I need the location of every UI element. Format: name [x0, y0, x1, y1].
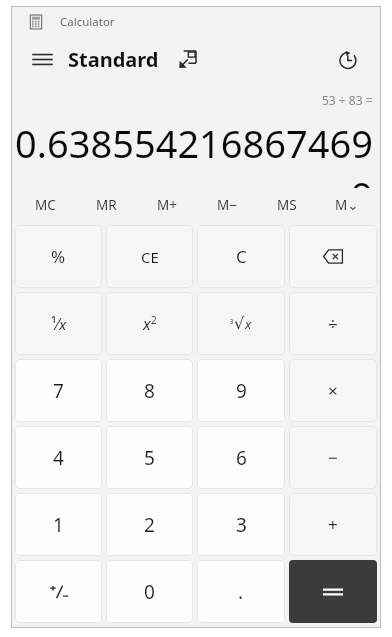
- button[interactable]: Open navigation menu: [27, 44, 57, 74]
- staticText: M+: [157, 196, 177, 214]
- staticText: MC: [35, 196, 56, 214]
- button[interactable]: 4: [15, 426, 102, 489]
- staticText: ÷: [328, 312, 338, 335]
- staticText: %: [51, 245, 66, 268]
- button[interactable]: ¹⁄: [15, 292, 102, 355]
- button[interactable]: 9: [197, 359, 285, 422]
- staticText: MR: [96, 196, 117, 214]
- button[interactable]: 3: [197, 493, 285, 556]
- staticText: 0.6385542168674699: [11, 117, 373, 188]
- button[interactable]: ³: [197, 292, 285, 355]
- button[interactable]: 2: [106, 493, 193, 556]
- staticText: 1: [53, 512, 64, 538]
- button[interactable]: M+: [137, 188, 197, 222]
- staticText: CE: [141, 247, 159, 267]
- staticText: 9: [236, 378, 247, 404]
- button[interactable]: 0.6385542168674699: [11, 117, 373, 188]
- staticText: x: [245, 315, 252, 333]
- button[interactable]: %: [15, 225, 102, 288]
- staticText: Calculator: [60, 14, 115, 30]
- button[interactable]: 7: [15, 359, 102, 422]
- staticText: 2: [144, 512, 155, 538]
- staticText: .: [238, 579, 244, 605]
- staticText: 2: [151, 313, 157, 327]
- staticText: 5: [144, 445, 155, 471]
- button[interactable]: .: [197, 560, 285, 623]
- button[interactable]: −: [289, 426, 377, 489]
- button[interactable]: M−: [197, 188, 257, 222]
- staticText: C: [236, 245, 247, 268]
- staticText: x: [143, 313, 151, 335]
- staticText: Standard: [68, 46, 159, 73]
- button[interactable]: CE: [106, 225, 193, 288]
- button[interactable]: MS: [257, 188, 317, 222]
- staticText: M⌄: [335, 196, 359, 214]
- staticText: ×: [328, 379, 338, 402]
- button[interactable]: 53 ÷ 83 =: [322, 92, 373, 108]
- staticText: √: [234, 314, 245, 333]
- staticText: 6: [236, 445, 247, 471]
- staticText: MS: [277, 196, 297, 214]
- staticText: M−: [217, 196, 237, 214]
- staticText: ³: [230, 318, 234, 330]
- button[interactable]: History: [331, 43, 363, 75]
- staticText: 0: [144, 579, 155, 605]
- button[interactable]: 1: [15, 493, 102, 556]
- staticText: ¹⁄: [51, 313, 59, 335]
- button[interactable]: C: [197, 225, 285, 288]
- staticText: 7: [53, 378, 64, 404]
- button[interactable]: 5: [106, 426, 193, 489]
- button[interactable]: 8: [106, 359, 193, 422]
- button[interactable]: +: [289, 493, 377, 556]
- button[interactable]: x: [106, 292, 193, 355]
- staticText: 8: [144, 378, 155, 404]
- staticText: −: [328, 446, 338, 469]
- button[interactable]: Backspace: [289, 225, 377, 288]
- staticText: +: [328, 513, 338, 536]
- button[interactable]: MR: [76, 188, 137, 222]
- staticText: 4: [53, 445, 64, 471]
- staticText: 53 ÷ 83 =: [322, 92, 373, 108]
- button[interactable]: 0: [106, 560, 193, 623]
- button[interactable]: MC: [15, 188, 76, 222]
- button[interactable]: ÷: [289, 292, 377, 355]
- button[interactable]: Plus minus: [15, 560, 102, 623]
- button[interactable]: 6: [197, 426, 285, 489]
- button[interactable]: ×: [289, 359, 377, 422]
- button[interactable]: Standard: [68, 46, 159, 73]
- button[interactable]: Keep on top: [173, 45, 201, 73]
- button[interactable]: Equals: [289, 560, 377, 623]
- staticText: 3: [236, 512, 247, 538]
- staticText: x: [59, 314, 67, 334]
- button[interactable]: M⌄: [317, 188, 377, 222]
